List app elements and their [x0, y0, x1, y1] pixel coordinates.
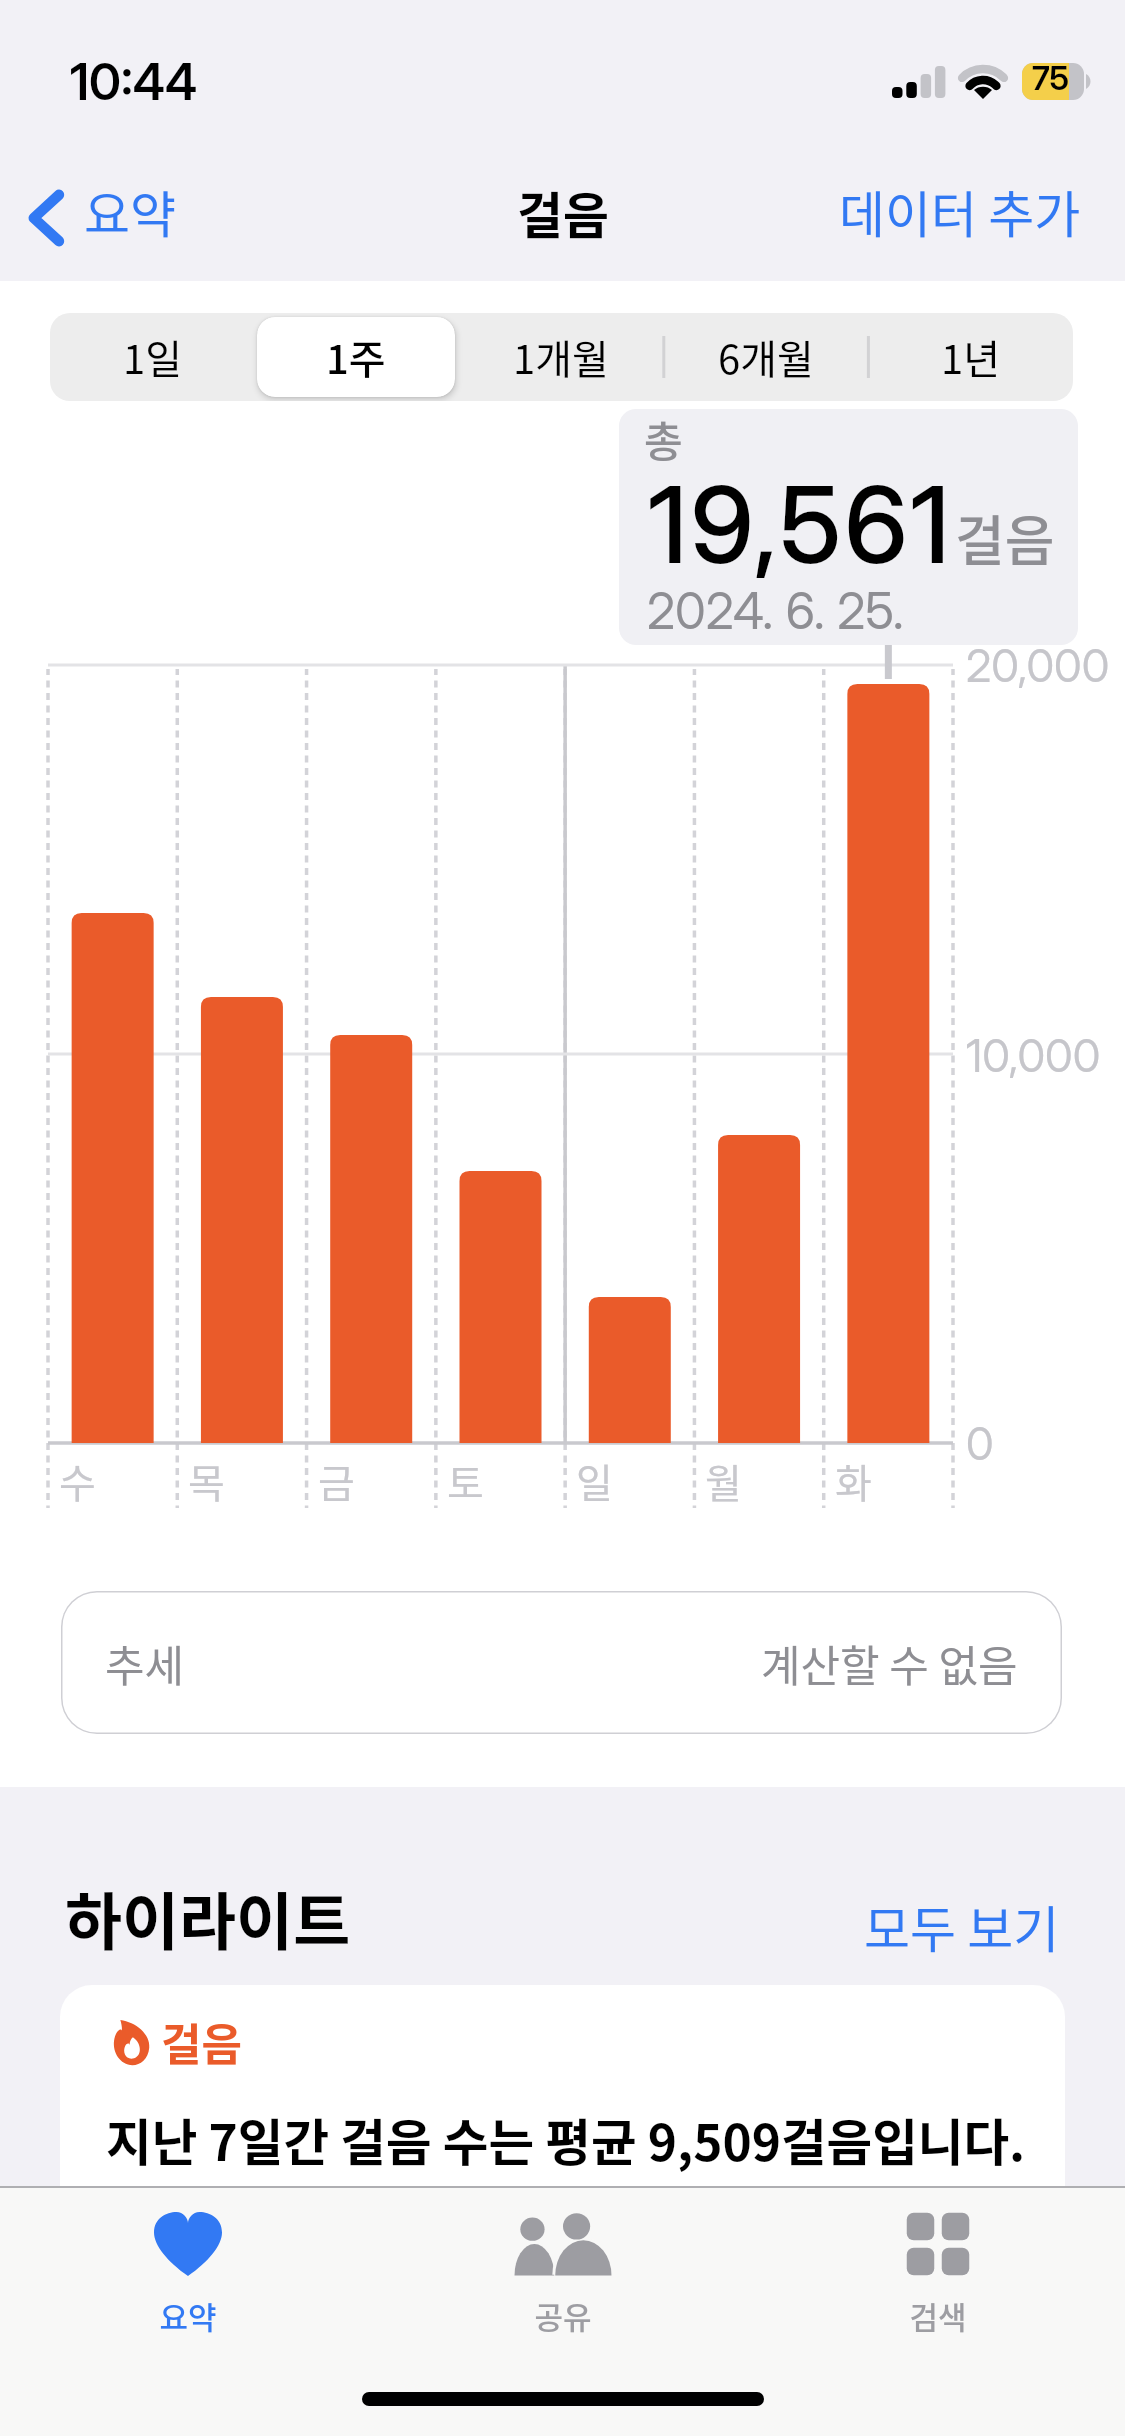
staticText: 6개월	[718, 328, 814, 386]
staticText: 총	[644, 409, 683, 469]
staticText: 1주	[326, 328, 386, 386]
button[interactable]: 검색	[750, 2188, 1125, 2368]
staticText: 1개월	[513, 328, 609, 386]
other: 요약	[138, 2212, 238, 2276]
staticText: 공유	[534, 2293, 592, 2338]
staticText: 계산할 수 없음	[761, 1632, 1018, 1694]
staticText: 1년	[941, 328, 1000, 386]
staticText: 일	[576, 1452, 613, 1510]
staticText: 하이라이트	[65, 1873, 351, 1963]
staticText: 토	[447, 1452, 484, 1510]
staticText: 화	[835, 1452, 872, 1510]
button[interactable]: 1년	[868, 313, 1073, 401]
staticText: 걸음	[517, 176, 609, 248]
button[interactable]: 6개월	[663, 313, 868, 401]
staticText: 10,000	[966, 1028, 1101, 1082]
staticText: 목	[188, 1452, 225, 1510]
staticText: 수	[59, 1452, 96, 1510]
staticText: 2024. 6. 25.	[647, 581, 904, 641]
staticText: 금	[318, 1452, 355, 1510]
button[interactable]: 요약	[0, 2188, 375, 2368]
staticText: 요약	[159, 2293, 217, 2338]
button[interactable]: 1주	[254, 313, 458, 401]
button[interactable]: 추세	[61, 1591, 1062, 1734]
button[interactable]: 모두 보기	[864, 1886, 1060, 1966]
button[interactable]: 공유	[375, 2188, 750, 2368]
staticText: 10:44	[70, 52, 198, 112]
staticText: 검색	[909, 2293, 967, 2338]
staticText: 1일	[123, 328, 182, 386]
staticText: 추세	[105, 1632, 185, 1694]
staticText: 모두 보기	[864, 1890, 1060, 1962]
staticText: 걸음	[161, 2010, 242, 2074]
staticText: 지난 7일간 걸음 수는 평균 9,509걸음입니다.	[106, 2103, 1026, 2175]
staticText: 19,561	[648, 460, 953, 588]
other: 검색	[888, 2212, 988, 2276]
staticText: 0	[966, 1416, 994, 1470]
staticText: 75	[1032, 58, 1069, 98]
other: 공유	[513, 2212, 613, 2276]
button[interactable]: 1개월	[458, 313, 663, 401]
button[interactable]: 걸음	[60, 1985, 1065, 2285]
staticText: 요약	[84, 175, 176, 247]
button[interactable]: 요약	[22, 170, 176, 260]
staticText: 20,000	[966, 638, 1110, 692]
button[interactable]: 데이터 추가	[839, 166, 1081, 256]
staticText: 월	[705, 1452, 742, 1510]
staticText: 데이터 추가	[839, 175, 1081, 247]
button[interactable]: 1일	[50, 313, 254, 401]
staticText: 걸음	[955, 498, 1055, 576]
